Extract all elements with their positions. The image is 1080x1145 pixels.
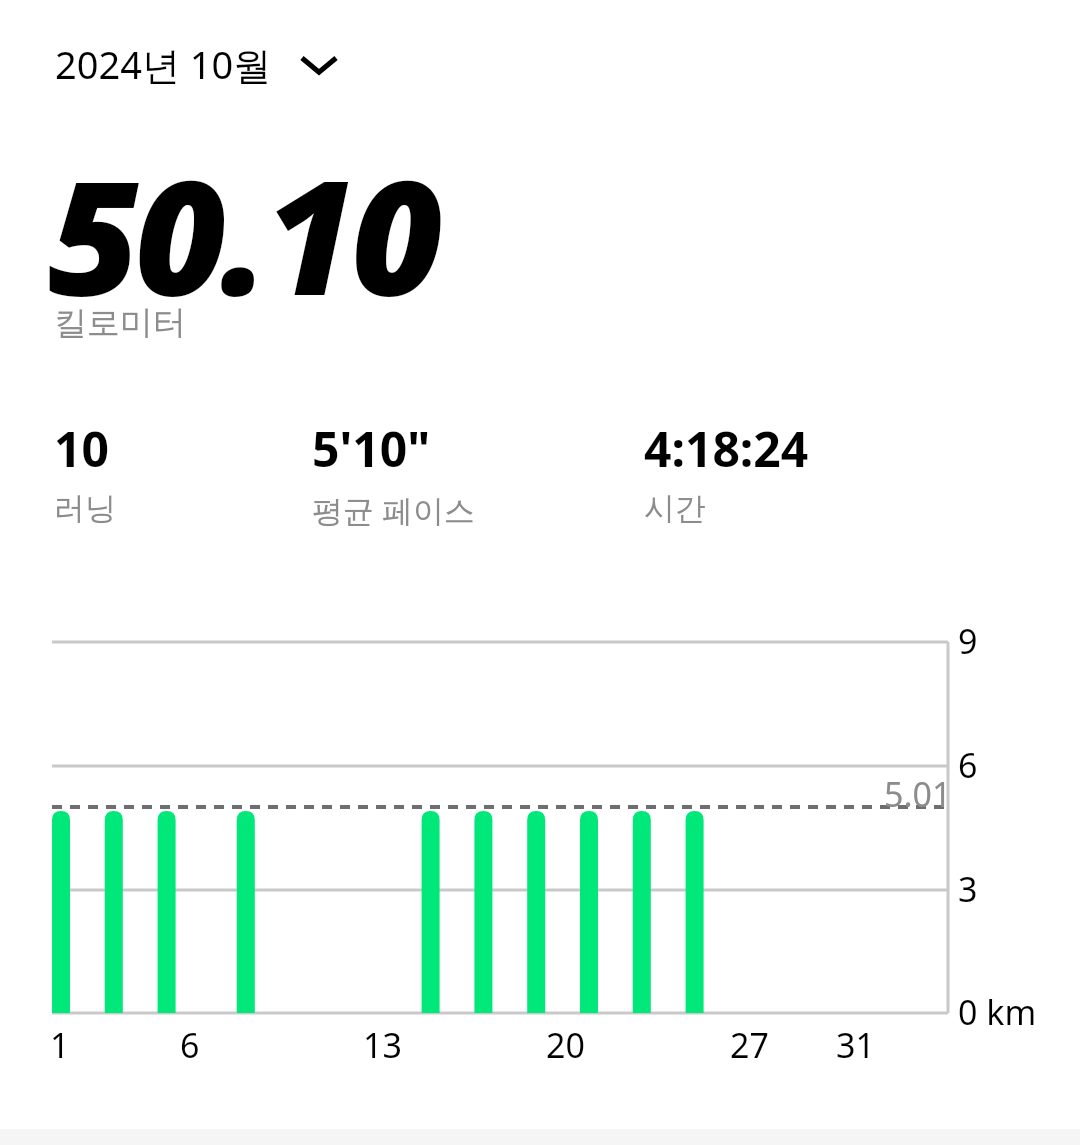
staticText: 50.10 — [48, 126, 438, 341]
button[interactable]: 10 — [54, 416, 116, 528]
staticText: 3 — [958, 866, 978, 912]
staticText: 6 — [958, 742, 978, 788]
staticText: 9 — [958, 618, 978, 664]
staticText: 2024년 10월 — [55, 38, 272, 90]
staticText: 러닝 — [54, 489, 116, 528]
staticText: 5'10" — [312, 416, 431, 481]
staticText: 킬로미터 — [54, 302, 186, 344]
staticText: 평균 페이스 — [312, 489, 476, 531]
staticText: 10 — [54, 416, 109, 481]
other: Select month — [296, 41, 342, 87]
staticText: 6 — [180, 1022, 200, 1068]
staticText: 13 — [363, 1022, 402, 1068]
staticText: 31 — [836, 1022, 875, 1068]
staticText: 1 — [50, 1022, 70, 1068]
staticText: 시간 — [644, 489, 706, 528]
button[interactable]: 4:18:24 — [644, 416, 809, 528]
staticText: 0 km — [958, 989, 1037, 1035]
staticText: 27 — [730, 1022, 769, 1068]
button[interactable]: 2024년 10월 — [50, 34, 352, 94]
staticText: 4:18:24 — [644, 416, 809, 481]
staticText: 5.01 — [884, 771, 952, 817]
button[interactable]: 5'10" — [312, 416, 476, 531]
staticText: 20 — [546, 1022, 585, 1068]
